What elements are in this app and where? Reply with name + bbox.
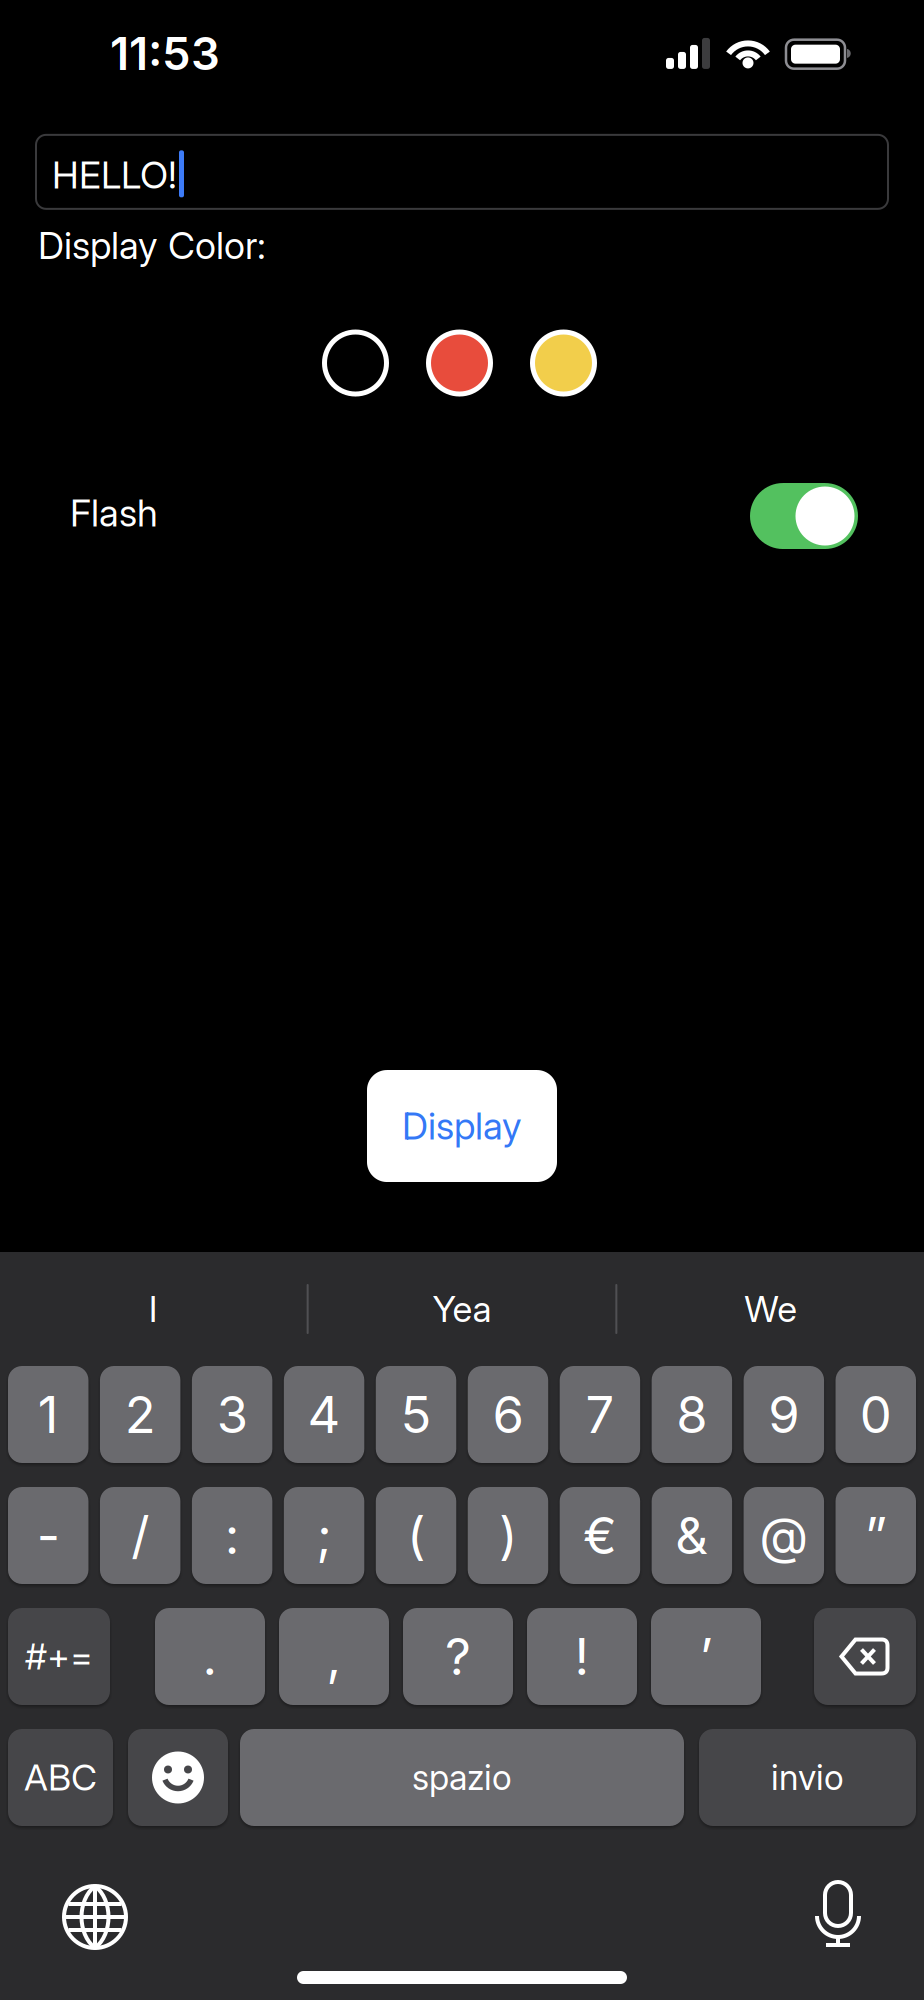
staticText: spazio — [412, 1756, 512, 1798]
button[interactable]: I — [0, 1287, 307, 1331]
staticText: @ — [759, 1505, 808, 1566]
staticText: 5 — [400, 1384, 431, 1445]
button[interactable]: ; — [284, 1487, 364, 1584]
button[interactable]: ( — [376, 1487, 456, 1584]
button[interactable]: invio — [699, 1729, 916, 1826]
staticText: 2 — [125, 1384, 156, 1445]
button[interactable]: 2 — [100, 1366, 180, 1463]
button[interactable]: spazio — [240, 1729, 684, 1826]
button[interactable]: € — [560, 1487, 640, 1584]
button[interactable]: 1 — [8, 1366, 88, 1463]
staticText: ’ — [699, 1626, 712, 1687]
button[interactable]: 3 — [192, 1366, 272, 1463]
staticText: Yea — [432, 1287, 491, 1331]
staticText: 6 — [492, 1384, 523, 1445]
staticText: / — [131, 1505, 149, 1566]
staticText: ” — [865, 1505, 887, 1566]
staticText: 8 — [676, 1384, 707, 1445]
button[interactable]: Display — [367, 1070, 557, 1182]
staticText: ABC — [24, 1756, 97, 1799]
button[interactable]: , — [279, 1608, 389, 1705]
button[interactable]: 5 — [376, 1366, 456, 1463]
button[interactable]: 9 — [744, 1366, 824, 1463]
button[interactable]: Next keyboard — [62, 1884, 128, 1950]
staticText: ! — [574, 1626, 589, 1687]
staticText: We — [744, 1287, 797, 1331]
button[interactable]: : — [192, 1487, 272, 1584]
staticText: - — [37, 1505, 60, 1566]
staticText: Flash — [70, 490, 158, 536]
staticText: & — [675, 1505, 708, 1566]
button[interactable]: Delete — [814, 1608, 916, 1705]
button[interactable]: ’ — [651, 1608, 761, 1705]
button[interactable]: ? — [403, 1608, 513, 1705]
staticText: ? — [445, 1626, 471, 1687]
staticText: 1 — [38, 1384, 59, 1445]
button[interactable]: #+= — [8, 1608, 110, 1705]
staticText: . — [202, 1626, 217, 1687]
button[interactable]: HELLO! — [36, 135, 888, 209]
staticText: ( — [407, 1505, 425, 1566]
staticText: 0 — [860, 1384, 892, 1445]
button[interactable]: Flash — [750, 483, 858, 549]
button[interactable]: Red color — [428, 332, 490, 394]
button[interactable]: 8 — [652, 1366, 732, 1463]
staticText: 7 — [585, 1384, 614, 1445]
staticText: #+= — [25, 1635, 93, 1678]
button[interactable]: . — [155, 1608, 265, 1705]
staticText: invio — [771, 1756, 844, 1798]
button[interactable]: @ — [744, 1487, 824, 1584]
button[interactable]: Yellow color — [532, 332, 594, 394]
button[interactable]: ABC — [8, 1729, 113, 1826]
button[interactable]: We — [617, 1287, 924, 1331]
staticText: , — [326, 1626, 341, 1687]
staticText: € — [583, 1505, 617, 1566]
staticText: ; — [317, 1505, 332, 1566]
staticText: ) — [499, 1505, 517, 1566]
staticText: I — [149, 1287, 158, 1331]
button[interactable]: Emoji — [128, 1729, 228, 1826]
button[interactable]: 7 — [560, 1366, 640, 1463]
staticText: : — [225, 1505, 240, 1566]
button[interactable]: & — [652, 1487, 732, 1584]
staticText: Display — [402, 1103, 522, 1149]
staticText: 3 — [217, 1384, 248, 1445]
button[interactable]: 4 — [284, 1366, 364, 1463]
button[interactable]: ! — [527, 1608, 637, 1705]
staticText: 9 — [768, 1384, 799, 1445]
button[interactable]: 6 — [468, 1366, 548, 1463]
button[interactable]: Black color — [324, 332, 386, 394]
button[interactable]: ) — [468, 1487, 548, 1584]
button[interactable]: 0 — [835, 1366, 916, 1463]
button[interactable]: - — [8, 1487, 88, 1584]
staticText: Display Color: — [38, 223, 266, 268]
staticText: 4 — [308, 1384, 341, 1445]
staticText: HELLO! — [52, 152, 177, 197]
staticText: 11:53 — [110, 26, 220, 81]
button[interactable]: Yea — [309, 1287, 615, 1331]
button[interactable]: / — [100, 1487, 180, 1584]
button[interactable]: Dictation — [815, 1882, 861, 1952]
button[interactable]: ” — [835, 1487, 916, 1584]
